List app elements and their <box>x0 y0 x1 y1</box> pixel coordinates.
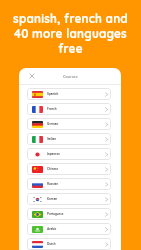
button[interactable]: Dutch <box>27 238 111 250</box>
staticText: Italian <box>47 137 57 141</box>
button[interactable]: Japanese <box>27 148 111 160</box>
button[interactable]: Spanish <box>27 88 111 100</box>
button[interactable]: Russian <box>27 178 111 190</box>
staticText: Arabic <box>47 227 57 231</box>
staticText: Portuguese <box>47 212 64 216</box>
staticText: Courses <box>63 74 78 79</box>
button[interactable]: Korean <box>27 193 111 205</box>
staticText: Dutch <box>47 242 56 246</box>
staticText: Chinese <box>47 167 59 171</box>
staticText: French <box>47 107 57 111</box>
staticText: Korean <box>47 197 58 201</box>
button[interactable]: German <box>27 118 111 130</box>
button[interactable]: Chinese <box>27 163 111 175</box>
staticText: Spanish <box>47 92 59 96</box>
button[interactable]: Italian <box>27 133 111 145</box>
staticText: spanish, french and 40 more languages fr… <box>2 11 139 56</box>
button[interactable]: Portuguese <box>27 208 111 220</box>
button[interactable]: Arabic <box>27 223 111 235</box>
staticText: Russian <box>47 182 59 186</box>
staticText: German <box>47 122 59 126</box>
staticText: Japanese <box>47 152 60 156</box>
button[interactable]: French <box>27 103 111 115</box>
button[interactable]: Close <box>27 71 37 81</box>
